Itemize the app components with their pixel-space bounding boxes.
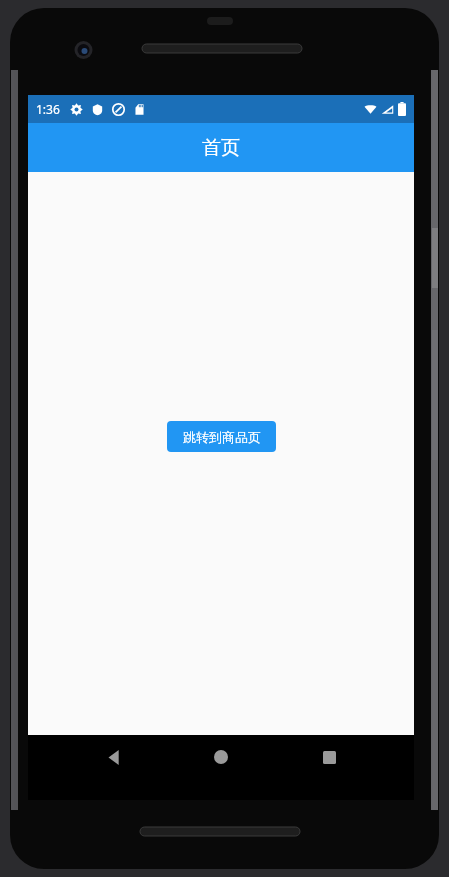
staticText: 1:36 [36,101,60,117]
button[interactable]: 跳转到商品页 [167,421,276,452]
staticText: 首页 [202,136,240,160]
button[interactable]: Back [92,735,136,779]
button[interactable]: Recents [307,735,351,779]
staticText: 跳转到商品页 [183,429,261,445]
button[interactable]: Home [199,735,243,779]
